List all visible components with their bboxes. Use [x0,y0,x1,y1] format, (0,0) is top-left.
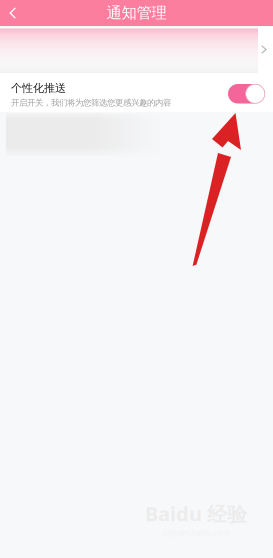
button[interactable]: 个性化推送开关 [228,84,265,103]
staticText: 个性化推送 [11,81,66,95]
button[interactable] [0,0,273,558]
staticText: Baidu 经验 [145,500,247,527]
staticText: 通知管理 [106,3,166,23]
staticText: 开启开关，我们将为您筛选您更感兴趣的内容 [11,97,171,108]
button[interactable]: 返回 [0,0,34,26]
